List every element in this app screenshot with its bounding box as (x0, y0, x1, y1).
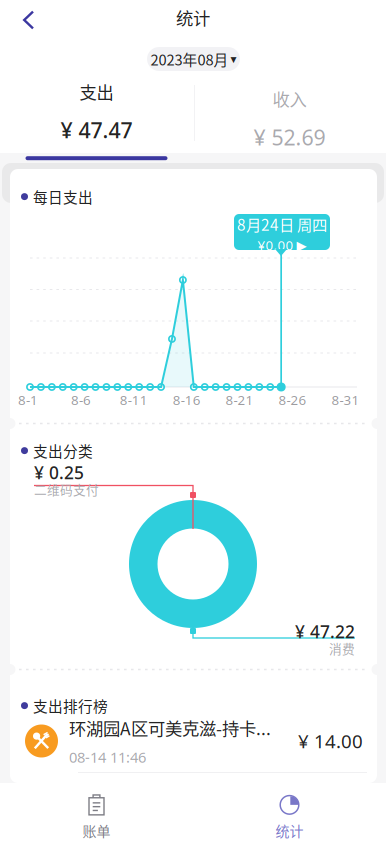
button[interactable]: 统计 (193, 783, 386, 841)
button[interactable]: 环湖园A区可美克滋-持卡... (10, 710, 377, 773)
button[interactable]: 2023年08月 (147, 47, 240, 71)
staticText: 账单 (82, 820, 110, 841)
staticText: ¥ 0.25 (34, 461, 84, 484)
staticText: ▾ (230, 52, 236, 66)
staticText: 8-11 (120, 391, 148, 409)
staticText: ¥ 47.22 (295, 620, 355, 643)
staticText: ¥ 47.47 (60, 116, 132, 144)
staticText: 统计 (176, 5, 210, 30)
staticText: 8-6 (71, 391, 91, 409)
staticText: 消费 (329, 639, 355, 657)
staticText: 统计 (275, 820, 303, 841)
staticText: 支出分类 (33, 440, 93, 461)
button[interactable]: 返回 (12, 0, 45, 40)
staticText: 每日支出 (33, 186, 93, 207)
staticText: 支出排行榜 (33, 695, 108, 716)
staticText: 8月24日 周四 (237, 213, 327, 235)
staticText: 收入 (272, 86, 306, 111)
staticText: 08-14 11:46 (69, 747, 146, 767)
staticText: 8-21 (226, 391, 254, 409)
staticText: 8-26 (278, 391, 306, 409)
button[interactable]: 账单 (0, 783, 193, 841)
staticText: 环湖园A区可美克滋-持卡... (69, 715, 271, 740)
staticText: ¥ 14.00 (298, 729, 363, 753)
staticText: ¥0.00 ▶ (257, 236, 306, 254)
staticText: 2023年08月 (150, 48, 228, 70)
button[interactable]: 收入 (193, 86, 386, 153)
staticText: 支出 (79, 79, 113, 104)
button[interactable]: 支出 (0, 86, 193, 153)
staticText: ¥ 52.69 (253, 123, 325, 151)
staticText: 8-1 (18, 391, 38, 409)
staticText: 二维码支付 (34, 480, 99, 498)
staticText: 8-16 (173, 391, 201, 409)
staticText: 8-31 (331, 391, 359, 409)
